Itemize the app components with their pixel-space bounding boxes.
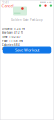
staticText: ▪▪▪ ▴ ▬ — [40, 0, 52, 3]
staticText: Time 1:02:47 — [2, 35, 21, 39]
button[interactable]: Save Workout — [3, 46, 51, 53]
staticText: Calories 684 — [2, 43, 20, 47]
button[interactable]: Cancel — [0, 3, 14, 8]
staticText: Elev Gain 412 ft — [2, 31, 23, 34]
staticText: Avg HR 138 bpm — [2, 47, 26, 51]
staticText: Golden Gate Park Loop — [11, 18, 43, 22]
staticText: Cancel — [1, 3, 13, 8]
button[interactable]: Favorite — [44, 3, 47, 8]
staticText: Pace 11:58 /mi — [2, 39, 23, 43]
staticText: 9:41 — [2, 0, 9, 5]
button[interactable]: Share — [49, 3, 52, 8]
staticText: Distance 5.24 mi — [2, 27, 25, 30]
staticText: Save Workout — [15, 47, 39, 53]
button[interactable]: Directions — [38, 3, 42, 8]
